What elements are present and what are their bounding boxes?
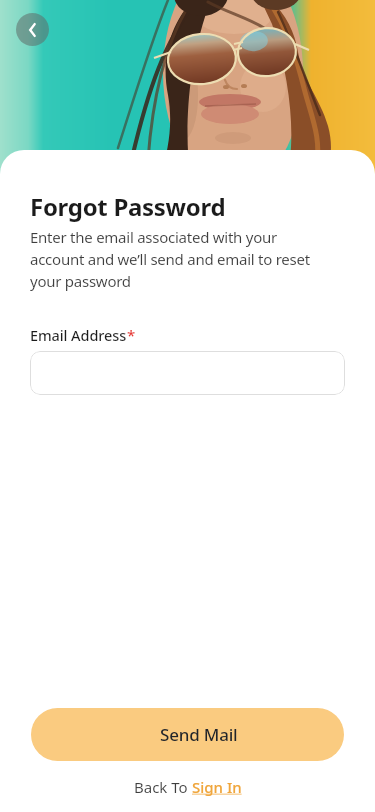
staticText: * bbox=[127, 325, 136, 345]
staticText: Send Mail bbox=[160, 723, 238, 746]
staticText: Email Address bbox=[30, 325, 127, 345]
button[interactable]: Sign In bbox=[192, 777, 242, 797]
button[interactable] bbox=[30, 351, 345, 395]
staticText: Forgot Password bbox=[30, 190, 226, 223]
button[interactable]: Send Mail bbox=[31, 708, 344, 761]
button[interactable] bbox=[16, 13, 49, 46]
staticText: Back To bbox=[134, 777, 192, 797]
staticText: Enter the email associated with your acc… bbox=[30, 227, 310, 292]
